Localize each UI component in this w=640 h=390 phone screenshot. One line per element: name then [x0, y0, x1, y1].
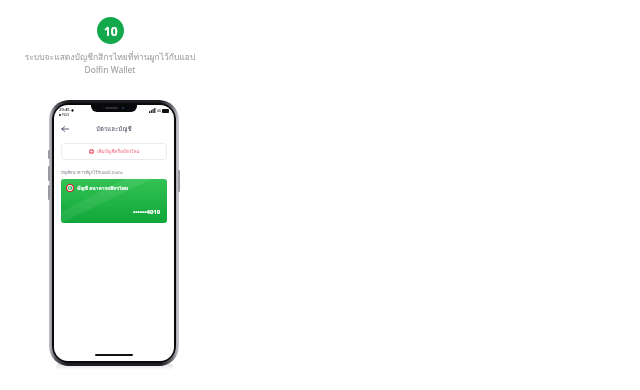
button[interactable]: Back: [58, 122, 71, 135]
staticText: เพิ่มบัญชีหรือบัตรใหม่: [97, 148, 140, 155]
button[interactable]: บัญชี ธนาคารกสิกรไทย: [61, 179, 167, 223]
staticText: 4G: [157, 109, 161, 113]
staticText: 10: [104, 23, 118, 39]
staticText: บัญชี ธนาคารกสิกรไทย: [77, 184, 129, 192]
staticText: ••••••4019: [133, 208, 161, 216]
staticText: PLUS: [62, 113, 69, 117]
staticText: บัญชีธนาคารที่ผูกไว้กับแอป Dolfin: [61, 169, 124, 176]
button[interactable]: เพิ่มบัญชีหรือบัตรใหม่: [61, 143, 167, 160]
staticText: 20:45: [59, 107, 70, 113]
staticText: ระบบจะแสดงบัญชีกสิกรไทยที่ท่านผูกไว้กับแ…: [12, 50, 208, 76]
staticText: บัตรและบัญชี: [96, 124, 132, 134]
button[interactable]: 10: [97, 17, 124, 44]
